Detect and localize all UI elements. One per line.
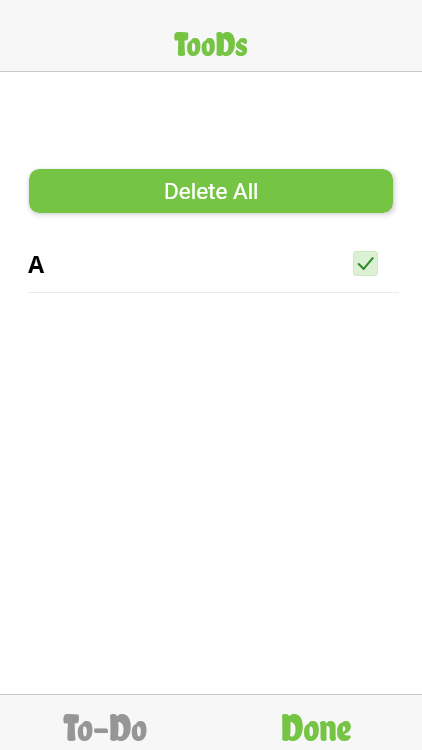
staticText: TooDs: [174, 25, 248, 64]
staticText: Done: [281, 706, 352, 750]
button[interactable]: Done: [211, 706, 422, 750]
staticText: To-Do: [63, 706, 148, 750]
button[interactable]: Mark task done: [353, 251, 378, 276]
button[interactable]: A: [28, 213, 399, 292]
staticText: Delete All: [164, 178, 259, 204]
staticText: A: [28, 248, 45, 280]
button[interactable]: To-Do: [0, 706, 211, 750]
button[interactable]: Delete All: [29, 169, 393, 213]
